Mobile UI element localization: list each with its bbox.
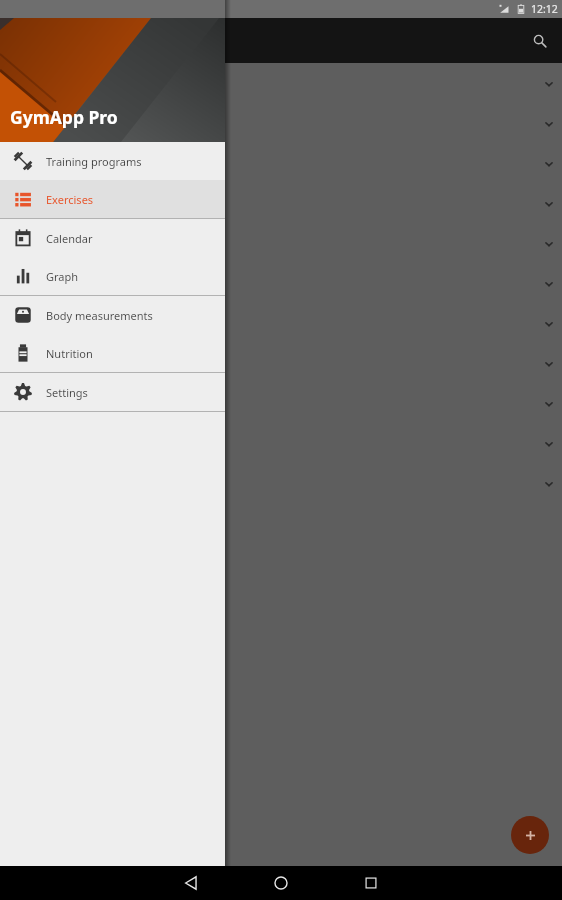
button[interactable]: Add	[511, 816, 549, 854]
button[interactable]	[0, 184, 562, 224]
button[interactable]	[0, 224, 562, 264]
staticText: Graph	[46, 269, 79, 284]
staticText: Calendar	[46, 231, 93, 246]
button[interactable]	[0, 344, 562, 384]
staticText: Exercises	[46, 192, 94, 207]
staticText: Body measurements	[46, 308, 153, 323]
button[interactable]	[0, 464, 562, 504]
button[interactable]: Nutrition	[0, 334, 225, 372]
staticText: Settings	[46, 385, 88, 400]
button[interactable]: Exercises	[0, 180, 225, 218]
button[interactable]	[0, 424, 562, 464]
button[interactable]	[0, 144, 562, 184]
staticText: GymApp Pro	[10, 105, 118, 129]
staticText: Training programs	[46, 154, 142, 169]
staticText: 12:12	[531, 2, 558, 16]
button[interactable]: Back	[174, 866, 208, 900]
button[interactable]	[0, 104, 562, 144]
button[interactable]: Recents	[354, 866, 388, 900]
button[interactable]: Body measurements	[0, 296, 225, 334]
button[interactable]	[0, 264, 562, 304]
staticText: Nutrition	[46, 346, 93, 361]
button[interactable]: Graph	[0, 257, 225, 295]
button[interactable]: Training programs	[0, 142, 225, 180]
button[interactable]: Calendar	[0, 219, 225, 257]
button[interactable]	[0, 384, 562, 424]
button[interactable]	[0, 304, 562, 344]
button[interactable]: Settings	[0, 373, 225, 411]
button[interactable]: Search	[526, 27, 554, 55]
button[interactable]	[0, 64, 562, 104]
button[interactable]: Home	[264, 866, 298, 900]
